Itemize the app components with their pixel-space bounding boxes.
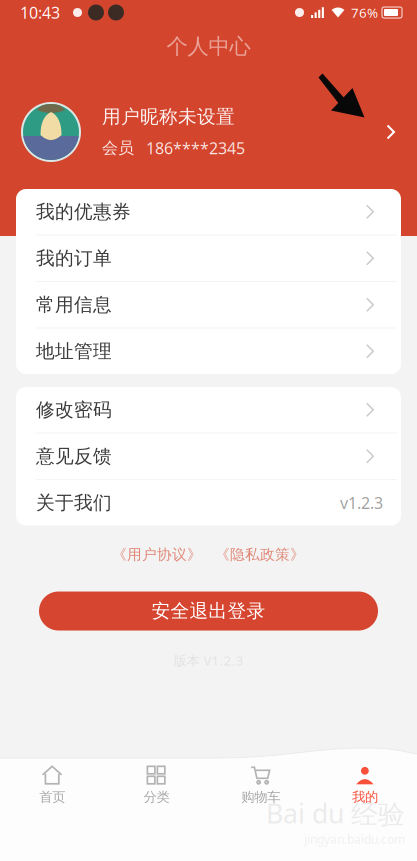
staticText: 地址管理 [36, 340, 112, 363]
button[interactable]: 我的 [313, 761, 417, 809]
button[interactable]: 意见反馈 [16, 433, 401, 479]
staticText: 首页 [39, 789, 65, 805]
button[interactable]: 我的优惠券 [16, 189, 401, 234]
staticText: 我的订单 [36, 247, 112, 270]
staticText: 我的优惠券 [36, 200, 131, 223]
button[interactable]: 首页 [0, 761, 104, 809]
button[interactable]: 关于我们 [16, 480, 401, 525]
button[interactable]: 购物车 [208, 761, 313, 809]
staticText: 《用户协议》 [112, 545, 202, 563]
staticText: 76% [351, 4, 378, 21]
staticText: 常用信息 [36, 293, 112, 316]
staticText: 购物车 [241, 789, 280, 805]
button[interactable]: 我的订单 [16, 235, 401, 281]
staticText: v1.2.3 [340, 492, 383, 513]
staticText: Bai du 经验 [266, 795, 405, 831]
staticText: 版本 V1.2.3 [173, 651, 243, 669]
staticText: jingyan.baidu.com [304, 831, 405, 847]
button[interactable]: 修改密码 [16, 387, 401, 432]
staticText: 《隐私政策》 [215, 545, 305, 563]
staticText: 用户昵称未设置 [102, 105, 235, 128]
button[interactable]: 《用户协议》 [112, 545, 202, 563]
button[interactable]: 常用信息 [16, 282, 401, 327]
staticText: 186****2345 [146, 137, 245, 158]
staticText: 会员 [102, 138, 134, 158]
staticText: 10:43 [20, 2, 60, 23]
staticText: 安全退出登录 [151, 600, 265, 622]
staticText: 意见反馈 [36, 445, 112, 468]
staticText: 我的 [352, 789, 378, 805]
button[interactable]: 《隐私政策》 [215, 545, 305, 563]
button[interactable]: 分类 [104, 761, 208, 809]
staticText: 修改密码 [36, 398, 112, 421]
staticText: 分类 [143, 789, 169, 805]
button[interactable]: 安全退出登录 [39, 591, 378, 630]
staticText: 个人中心 [166, 33, 250, 60]
button[interactable]: 地址管理 [16, 328, 401, 374]
staticText: 关于我们 [36, 491, 112, 514]
button[interactable]: 用户昵称未设置 [0, 93, 417, 171]
